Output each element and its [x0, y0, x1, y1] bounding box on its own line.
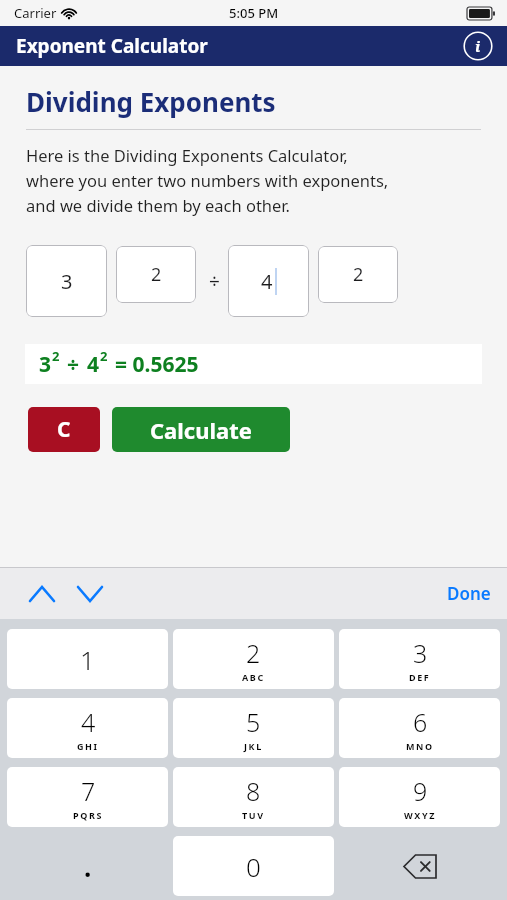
- staticText: i: [475, 36, 481, 56]
- staticText: 4: [81, 705, 96, 739]
- staticText: Dividing Exponents: [26, 84, 276, 119]
- staticText: 3: [61, 268, 73, 295]
- staticText: 9: [413, 774, 428, 808]
- button[interactable]: 3: [339, 629, 500, 689]
- button[interactable]: 3: [26, 245, 107, 317]
- staticText: WXYZ: [404, 809, 436, 821]
- staticText: 4: [261, 268, 273, 295]
- button[interactable]: Backspace: [339, 836, 500, 896]
- button[interactable]: 2: [173, 629, 334, 689]
- button[interactable]: 4: [228, 245, 309, 317]
- button[interactable]: 6: [339, 698, 500, 758]
- staticText: ÷: [67, 350, 80, 379]
- staticText: ABC: [242, 671, 265, 683]
- staticText: 3: [413, 636, 428, 670]
- staticText: 2: [246, 636, 261, 670]
- button[interactable]: 2: [116, 246, 196, 303]
- staticText: 5:05 PM: [229, 4, 279, 22]
- button[interactable]: 2: [318, 246, 398, 303]
- staticText: C: [57, 415, 71, 444]
- staticText: TUV: [242, 809, 265, 821]
- staticText: 2: [151, 262, 162, 287]
- staticText: 5: [246, 705, 261, 739]
- button[interactable]: Previous field: [22, 576, 62, 612]
- staticText: Calculate: [150, 415, 252, 445]
- staticText: 1: [80, 642, 95, 677]
- staticText: JKL: [244, 740, 263, 752]
- staticText: 4: [87, 350, 100, 379]
- staticText: 2: [353, 262, 364, 287]
- staticText: .: [84, 849, 92, 884]
- button[interactable]: 8: [173, 767, 334, 827]
- staticText: DEF: [409, 671, 431, 683]
- button[interactable]: 1: [7, 629, 168, 689]
- button[interactable]: 9: [339, 767, 500, 827]
- staticText: 2: [52, 347, 60, 365]
- staticText: Exponent Calculator: [16, 33, 208, 59]
- button[interactable]: Done: [447, 582, 491, 605]
- button[interactable]: 4: [7, 698, 168, 758]
- staticText: = 0.5625: [115, 350, 199, 379]
- staticText: Done: [447, 582, 491, 605]
- staticText: Carrier: [14, 4, 57, 22]
- staticText: PQRS: [73, 809, 103, 821]
- staticText: MNO: [406, 740, 434, 752]
- button[interactable]: 5: [173, 698, 334, 758]
- staticText: GHI: [77, 740, 99, 752]
- staticText: ÷: [209, 268, 220, 294]
- button[interactable]: Calculate: [112, 407, 290, 452]
- button[interactable]: Info: [462, 30, 494, 62]
- staticText: 2: [100, 347, 108, 365]
- staticText: 8: [246, 774, 261, 808]
- staticText: 7: [81, 774, 96, 808]
- button[interactable]: 0: [173, 836, 334, 896]
- staticText: 0: [246, 849, 261, 884]
- button[interactable]: 7: [7, 767, 168, 827]
- staticText: 6: [413, 705, 428, 739]
- button[interactable]: C: [28, 407, 100, 452]
- button[interactable]: Next field: [70, 576, 110, 612]
- staticText: Here is the Dividing Exponents Calculato…: [26, 144, 389, 216]
- button[interactable]: Decimal point: [7, 836, 168, 896]
- staticText: 3: [39, 350, 52, 379]
